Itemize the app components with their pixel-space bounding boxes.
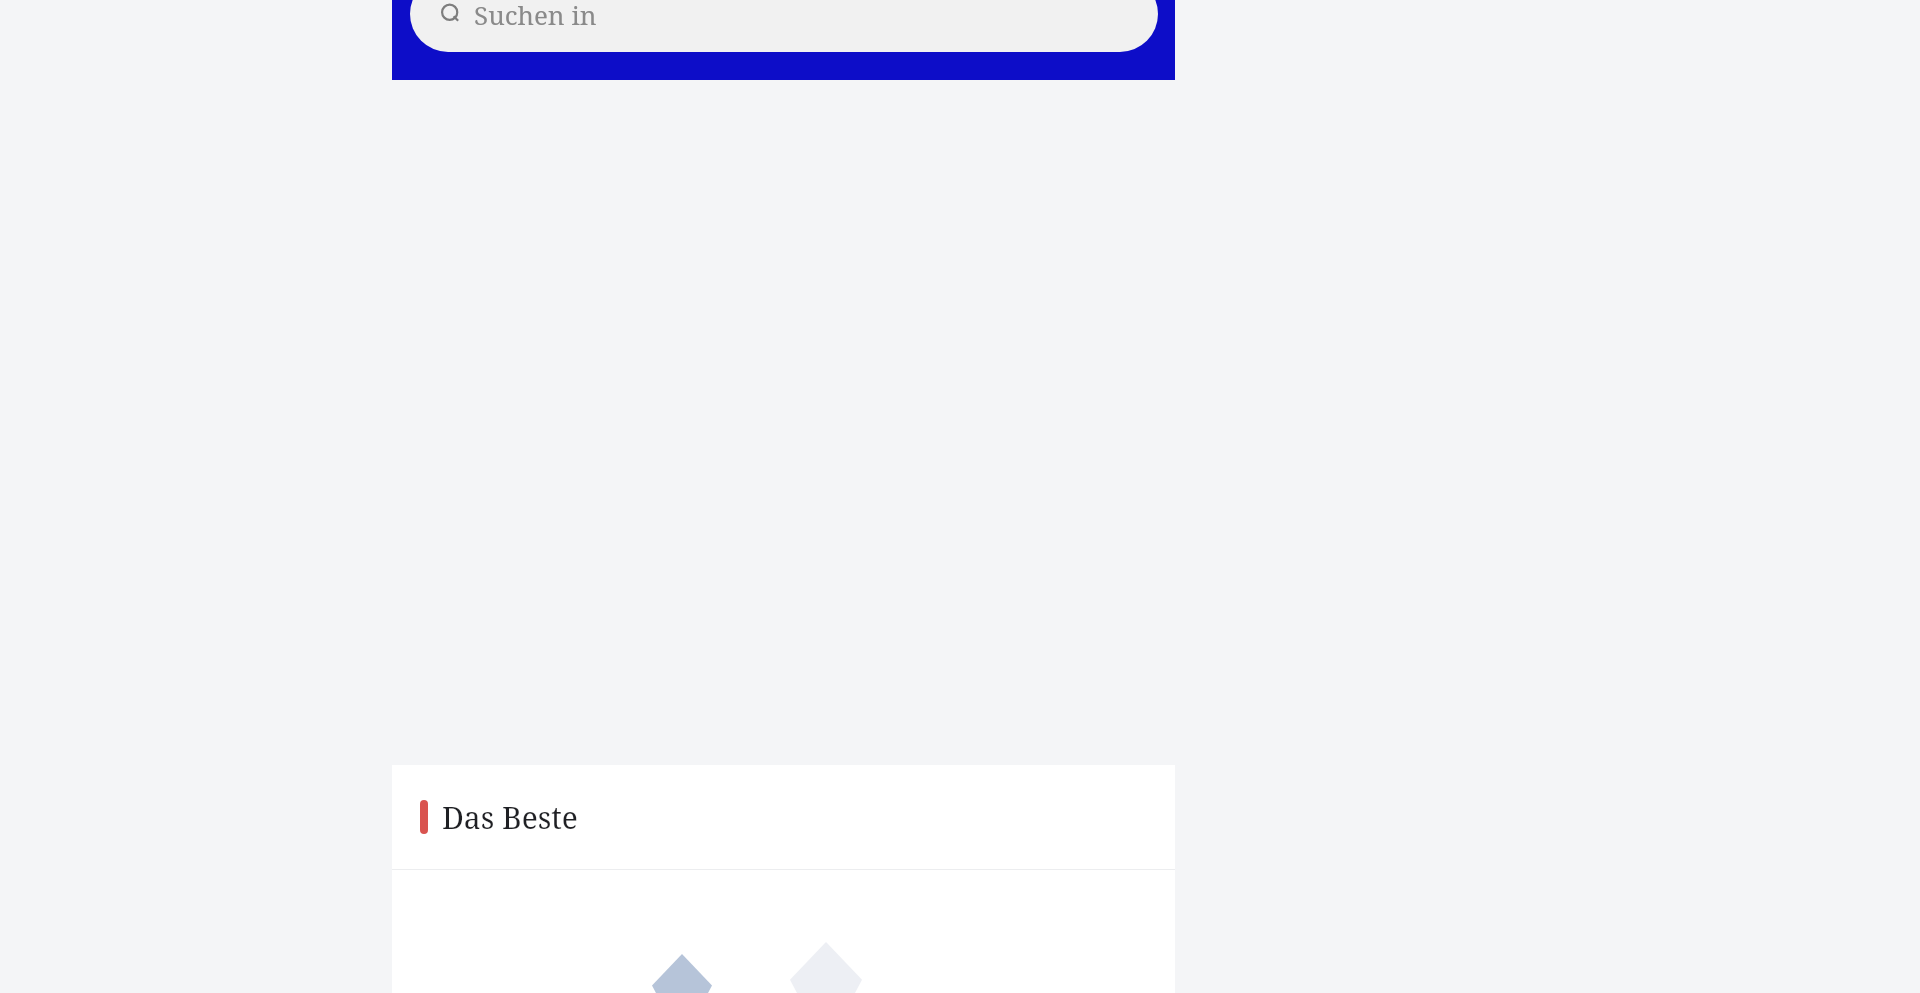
button[interactable]: Suchen in <box>410 0 1158 52</box>
staticText: Das Beste <box>442 797 578 838</box>
staticText: Suchen in <box>474 0 597 32</box>
button[interactable]: Das Beste <box>392 765 1175 869</box>
